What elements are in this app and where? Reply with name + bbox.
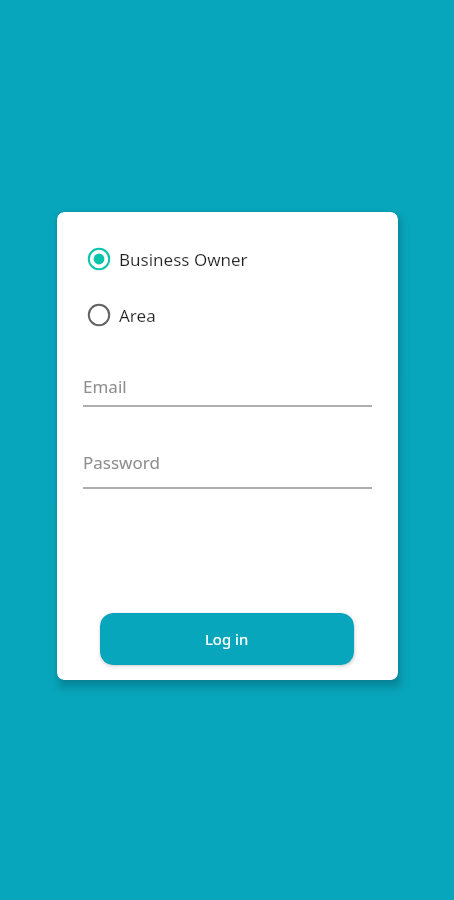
staticText: Email bbox=[83, 375, 127, 398]
button[interactable]: Area bbox=[88, 301, 156, 329]
button[interactable]: Business Owner bbox=[88, 245, 248, 273]
staticText: Business Owner bbox=[119, 248, 248, 271]
staticText: Log in bbox=[205, 629, 249, 649]
staticText: Password bbox=[83, 451, 160, 474]
button[interactable]: Log in bbox=[100, 613, 354, 665]
staticText: Area bbox=[119, 304, 156, 327]
